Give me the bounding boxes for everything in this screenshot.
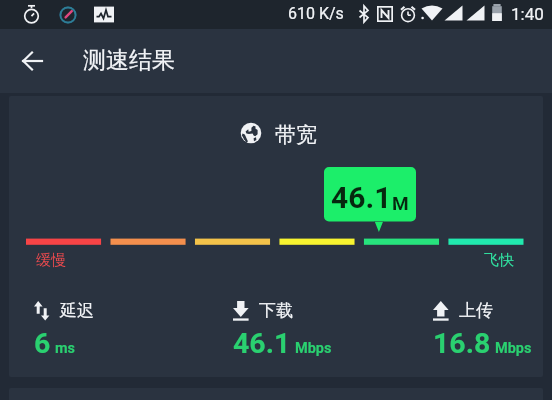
staticText: 上传 xyxy=(459,300,493,321)
staticText: 610 K/s xyxy=(288,4,344,23)
staticText: M xyxy=(392,192,409,214)
staticText: 延迟 xyxy=(60,300,94,321)
staticText: 飞快 xyxy=(484,251,514,270)
staticText: ms xyxy=(55,340,76,357)
staticText: 测速结果 xyxy=(83,46,175,75)
staticText: Mbps xyxy=(295,340,332,357)
staticText: 1:40 xyxy=(511,4,544,24)
staticText: Mbps xyxy=(495,340,532,357)
staticText: 46.1 xyxy=(233,327,291,360)
staticText: 16.8 xyxy=(433,327,491,360)
staticText: 带宽 xyxy=(275,122,317,148)
staticText: 下载 xyxy=(259,300,293,321)
staticText: 46.1 xyxy=(331,180,392,215)
staticText: 6 xyxy=(34,327,51,360)
button[interactable]: Back xyxy=(9,37,56,84)
staticText: 缓慢 xyxy=(36,251,66,270)
